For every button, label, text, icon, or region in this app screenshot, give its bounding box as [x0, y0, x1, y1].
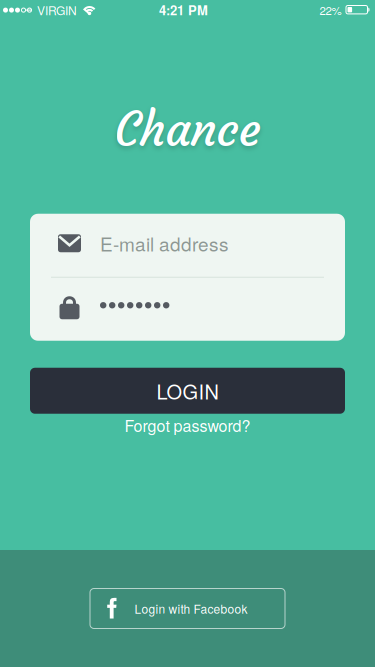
button[interactable]: E-mail address — [30, 214, 345, 277]
staticText: 4:21 PM — [159, 1, 208, 19]
button[interactable]: LOGIN — [30, 368, 345, 414]
staticText: Chance — [114, 100, 260, 159]
button[interactable] — [30, 278, 345, 341]
staticText: VIRGIN — [37, 1, 77, 19]
staticText: 22% — [319, 2, 341, 18]
button[interactable]: Login with Facebook — [90, 588, 285, 628]
staticText: LOGIN — [156, 376, 218, 405]
staticText: Login with Facebook — [134, 600, 247, 617]
staticText: E-mail address — [100, 230, 229, 257]
staticText: Forgot password? — [124, 414, 250, 437]
button[interactable]: Forgot password? — [124, 414, 250, 437]
